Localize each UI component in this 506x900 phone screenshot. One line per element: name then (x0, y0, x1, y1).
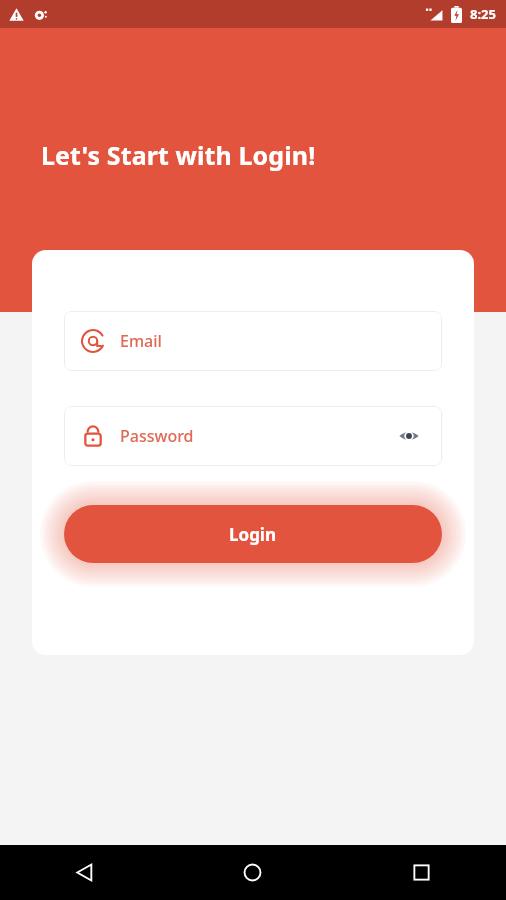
button[interactable]: Password (64, 406, 442, 466)
staticText: Password (120, 425, 194, 447)
button[interactable]: Home (168, 845, 337, 900)
button[interactable]: Back (0, 845, 168, 900)
button[interactable]: Show password (393, 420, 425, 452)
staticText: Login (229, 523, 277, 546)
button[interactable]: Recent apps (337, 845, 506, 900)
button[interactable]: Email (64, 311, 442, 371)
button[interactable]: Login (64, 505, 442, 563)
staticText: 8:25 (470, 5, 496, 23)
staticText: Let's Start with Login! (41, 138, 316, 172)
staticText: Email (120, 330, 162, 352)
